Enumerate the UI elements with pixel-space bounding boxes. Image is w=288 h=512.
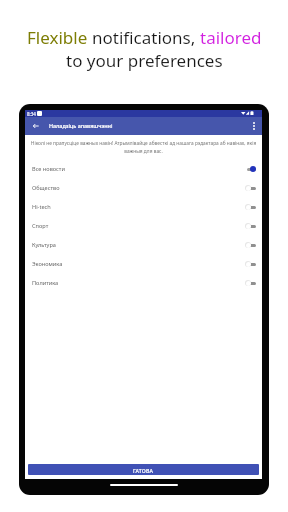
staticText: Спорт (32, 222, 49, 230)
button[interactable]: ГАТОВА (28, 464, 259, 475)
staticText: Экономика (32, 260, 63, 268)
button[interactable]: Культура (25, 235, 262, 254)
staticText: ГАТОВА (133, 467, 154, 474)
staticText: Flexible (27, 26, 92, 49)
staticText: 8:34 (27, 111, 36, 117)
staticText: Все новости (32, 165, 65, 173)
staticText: notifications, (92, 26, 200, 49)
button[interactable]: Hi-tech (25, 197, 262, 216)
button[interactable]: More options (247, 119, 261, 133)
button[interactable]: Спорт (25, 216, 262, 235)
staticText: Hi-tech (32, 203, 51, 211)
staticText: tailored (200, 26, 262, 49)
staticText: Культура (32, 241, 56, 249)
button[interactable]: Back (29, 119, 43, 133)
button[interactable]: Политика (25, 273, 262, 292)
staticText: Наладзіць апавяшчэнні (49, 122, 113, 129)
button[interactable]: Все новости (25, 159, 262, 178)
button[interactable]: Общество (25, 178, 262, 197)
staticText: Политика (32, 279, 59, 287)
staticText: Общество (32, 184, 60, 192)
staticText: to your preferences (66, 49, 223, 72)
staticText: Ніколі не прапусціце важных навін! Атрым… (30, 140, 257, 155)
button[interactable]: Экономика (25, 254, 262, 273)
